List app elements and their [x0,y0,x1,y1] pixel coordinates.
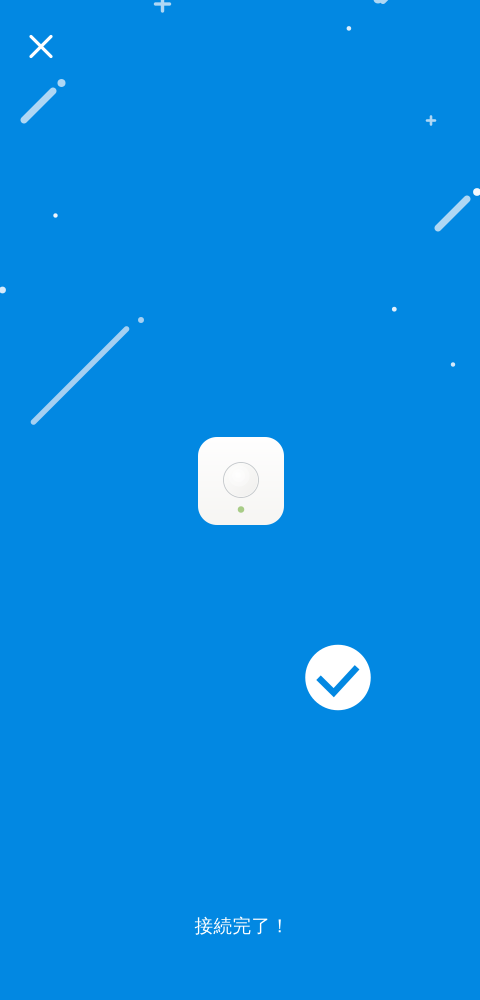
staticText: 接続完了！ [194,914,289,937]
button[interactable]: Close [20,25,62,67]
